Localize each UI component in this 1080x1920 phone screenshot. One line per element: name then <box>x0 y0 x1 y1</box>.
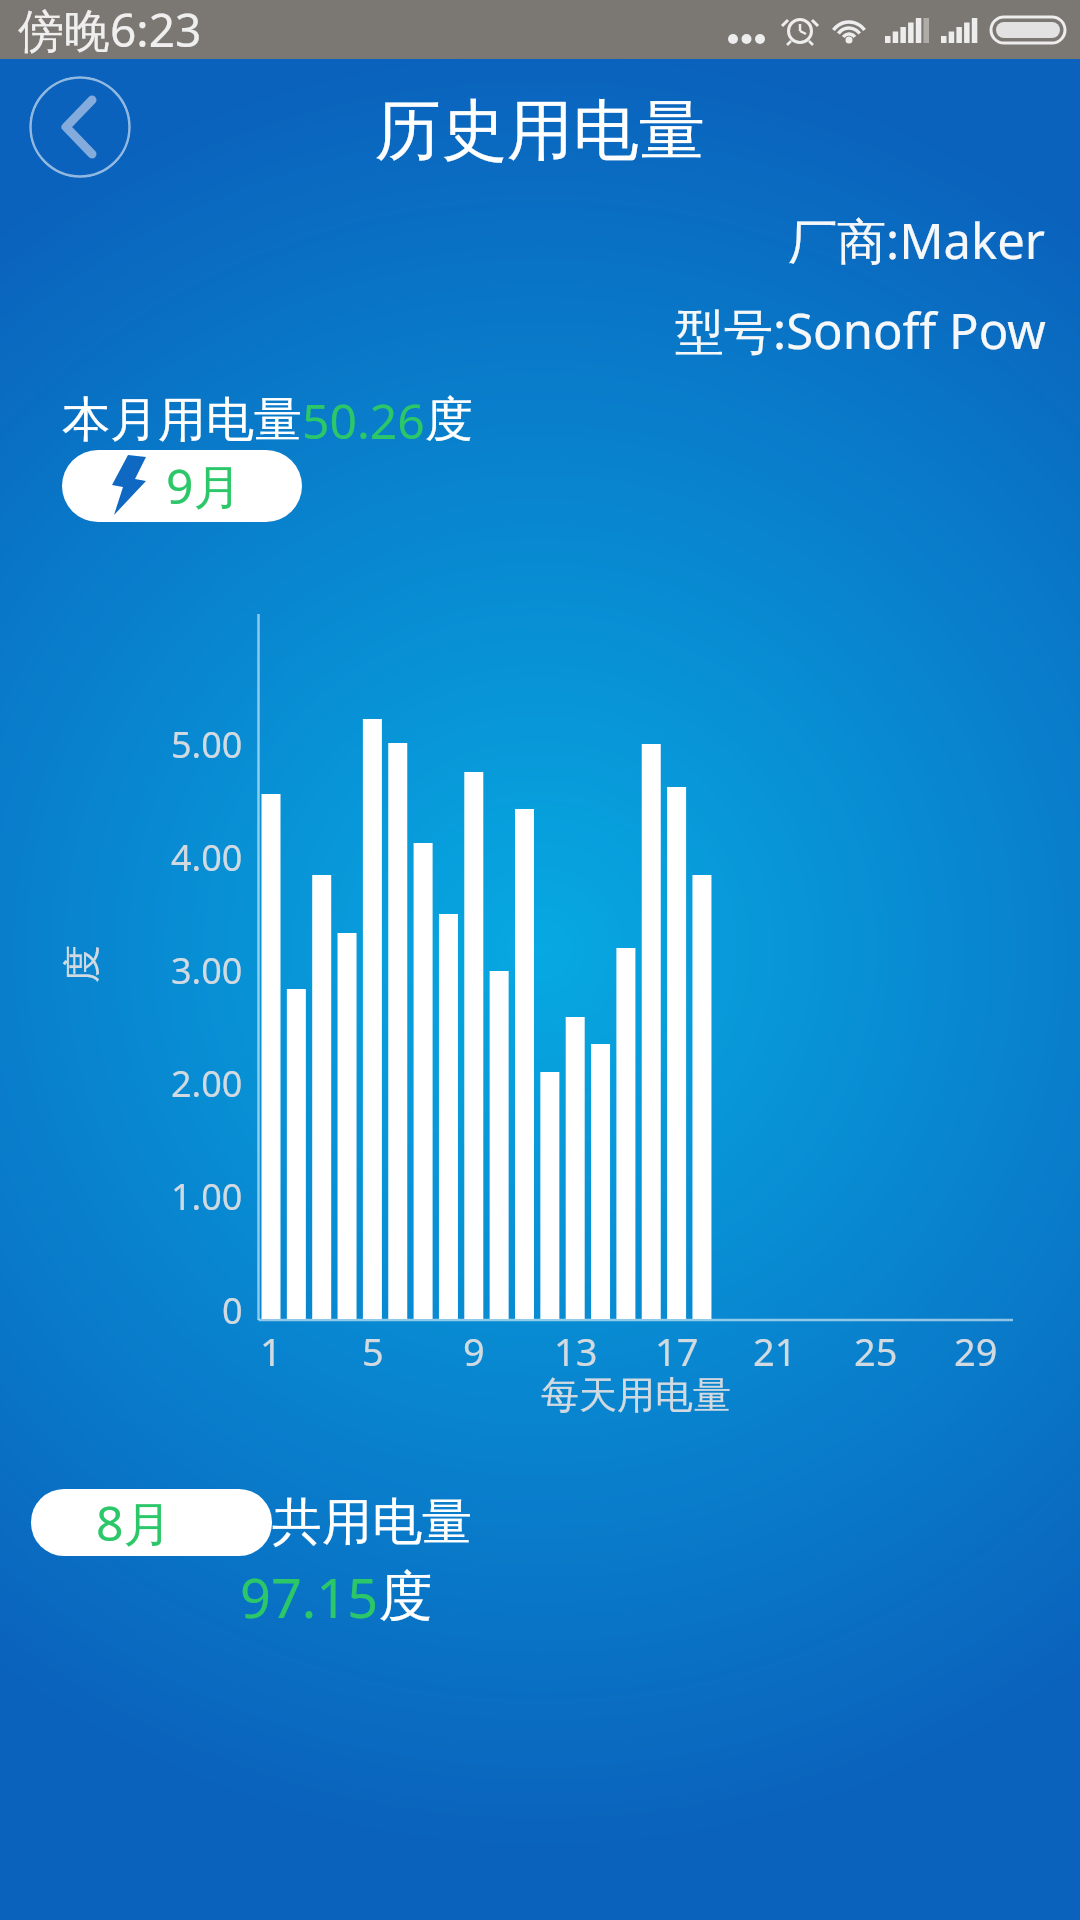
button[interactable] <box>62 450 302 522</box>
button[interactable] <box>31 1489 272 1556</box>
button[interactable] <box>29 76 131 178</box>
